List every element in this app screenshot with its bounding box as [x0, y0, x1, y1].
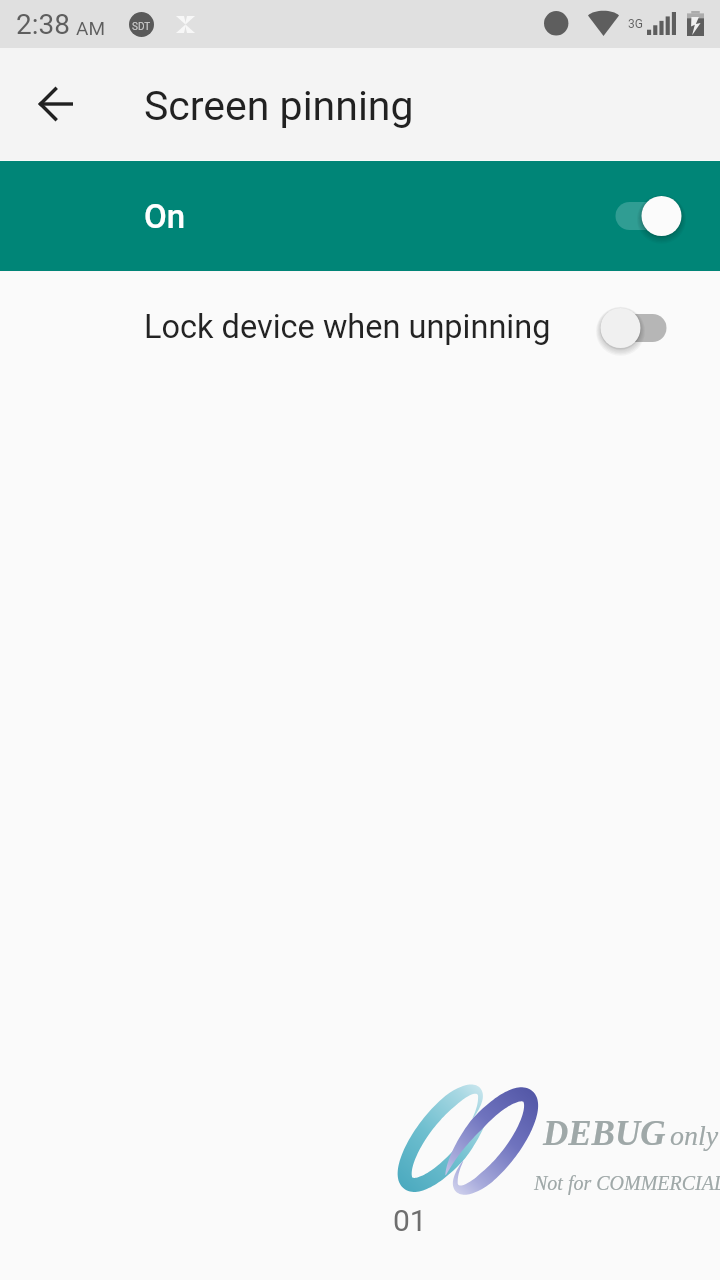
- button[interactable]: Lock device when unpinning: [0, 272, 720, 384]
- staticText: Screen pinning: [144, 82, 414, 130]
- staticText: only: [670, 1120, 719, 1151]
- staticText: Not for COMMERCIAL: [534, 1172, 720, 1194]
- button[interactable]: Navigate up: [24, 72, 88, 136]
- staticText: 2:38: [16, 8, 70, 41]
- button[interactable]: On: [0, 160, 720, 272]
- staticText: SDT: [132, 21, 151, 33]
- button[interactable]: Lock device when unpinning: [599, 298, 683, 358]
- staticText: 3G: [628, 17, 643, 31]
- staticText: 01: [393, 1203, 427, 1238]
- staticText: On: [144, 197, 186, 236]
- staticText: Lock device when unpinning: [144, 308, 551, 346]
- staticText: DEBUG: [543, 1114, 666, 1153]
- staticText: AM: [76, 17, 105, 39]
- button[interactable]: Screen pinning on: [599, 186, 683, 246]
